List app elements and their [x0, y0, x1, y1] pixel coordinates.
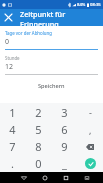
button[interactable]: Startbildschirm	[34, 172, 55, 183]
staticText: .	[11, 156, 14, 171]
button[interactable]: Übersicht	[55, 172, 76, 183]
button[interactable]: 2	[25, 103, 51, 121]
staticText: 6	[61, 122, 68, 137]
button[interactable]: Minus	[77, 103, 103, 121]
button[interactable]: Tastatur wechseln	[76, 172, 97, 183]
staticText: 0	[35, 156, 42, 171]
staticText: Speichern	[38, 82, 65, 90]
staticText: Zeitpunkt für Erinnerung	[20, 9, 103, 26]
staticText: 5	[35, 122, 42, 137]
button[interactable]: 4	[0, 121, 25, 138]
button[interactable]: 1	[0, 103, 25, 121]
button[interactable]: 7	[0, 138, 25, 155]
staticText: 4	[9, 122, 16, 137]
staticText: -	[89, 106, 92, 118]
button[interactable]: 0	[25, 155, 51, 172]
staticText: 12	[5, 62, 14, 72]
button[interactable]: 5	[25, 121, 51, 138]
button[interactable]: Komma	[77, 121, 103, 138]
staticText: 3	[61, 105, 68, 120]
button[interactable]: 9	[51, 138, 77, 155]
button[interactable]: Schließen	[0, 9, 17, 26]
staticText: 84%	[77, 2, 86, 8]
staticText: 08:35	[90, 2, 101, 8]
staticText: 8	[35, 139, 42, 154]
staticText: 2	[35, 105, 42, 120]
staticText: 0	[5, 37, 10, 47]
button[interactable]: Bestätigen	[77, 155, 103, 172]
button[interactable]: Löschen	[77, 138, 103, 155]
button[interactable]: Speichern	[5, 80, 98, 91]
staticText: 7	[9, 139, 16, 154]
button[interactable]: _	[51, 155, 77, 172]
staticText: Stunde	[5, 55, 20, 61]
staticText: 1	[9, 105, 16, 120]
staticText: ,	[89, 124, 92, 136]
staticText: 9	[61, 139, 68, 154]
staticText: _	[62, 156, 67, 171]
button[interactable]: 8	[25, 138, 51, 155]
staticText: Tage vor der Abholung	[5, 30, 52, 36]
button[interactable]: Zurück	[13, 172, 34, 183]
button[interactable]: 6	[51, 121, 77, 138]
button[interactable]: .	[0, 155, 25, 172]
button[interactable]: 3	[51, 103, 77, 121]
